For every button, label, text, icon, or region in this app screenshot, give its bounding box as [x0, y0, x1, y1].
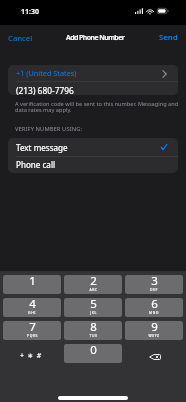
staticText: A verification code will be sent to this…	[15, 100, 179, 114]
staticText: Add Phone Number	[66, 33, 125, 43]
staticText: GHI	[28, 310, 36, 315]
button[interactable]: 5	[64, 298, 122, 317]
staticText: 6	[151, 298, 158, 312]
staticText: Text message	[16, 142, 68, 153]
staticText: PQRS	[27, 333, 38, 338]
button[interactable]: 9	[125, 321, 183, 340]
staticText: JKL	[90, 310, 97, 315]
button[interactable]: 1	[3, 275, 61, 294]
staticText: 8	[90, 321, 97, 335]
button[interactable]: 6	[125, 298, 183, 317]
button[interactable]: 2	[64, 275, 122, 294]
button[interactable]: (213) 680-7796	[8, 81, 178, 95]
button[interactable]: 3	[125, 275, 183, 294]
button[interactable]: + ∗ #	[3, 344, 61, 363]
button[interactable]: 8	[64, 321, 122, 340]
staticText: +1 (United States)	[16, 68, 77, 78]
staticText: 4	[29, 298, 36, 312]
staticText: (213) 680-7796	[16, 85, 74, 95]
staticText: VERIFY NUMBER USING:	[15, 125, 83, 133]
staticText: 11:30	[21, 7, 39, 17]
staticText: 0	[90, 344, 97, 358]
staticText: 5	[90, 298, 97, 312]
staticText: DEF	[150, 287, 158, 292]
staticText: 3	[151, 275, 158, 289]
button[interactable]: 4	[3, 298, 61, 317]
staticText: Cancel	[8, 33, 33, 44]
button[interactable]: +1 (United States)	[8, 65, 178, 81]
staticText: Phone call	[16, 159, 56, 170]
staticText: 1	[29, 275, 36, 289]
staticText: 7	[29, 321, 36, 335]
staticText: WXYZ	[148, 333, 160, 338]
staticText: 9	[151, 321, 158, 335]
button[interactable]: Backspace	[125, 344, 183, 363]
staticText: ABC	[89, 287, 98, 292]
button[interactable]: 0	[64, 344, 122, 363]
staticText: MNO	[149, 310, 159, 315]
button[interactable]: 7	[3, 321, 61, 340]
button[interactable]: Text message	[8, 138, 178, 156]
button[interactable]: Cancel	[0, 31, 41, 46]
staticText: Send	[159, 32, 178, 43]
button[interactable]: Send	[151, 30, 186, 45]
staticText: + ∗ #	[20, 351, 43, 361]
staticText: 2	[90, 275, 97, 289]
staticText: TUV	[89, 333, 98, 338]
button[interactable]: Phone call	[8, 156, 178, 173]
